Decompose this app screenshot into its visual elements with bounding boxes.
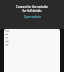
staticText: for full details xyxy=(22,9,42,13)
staticText: Connect to the website xyxy=(16,5,48,9)
button[interactable]: Open website xyxy=(24,15,41,19)
